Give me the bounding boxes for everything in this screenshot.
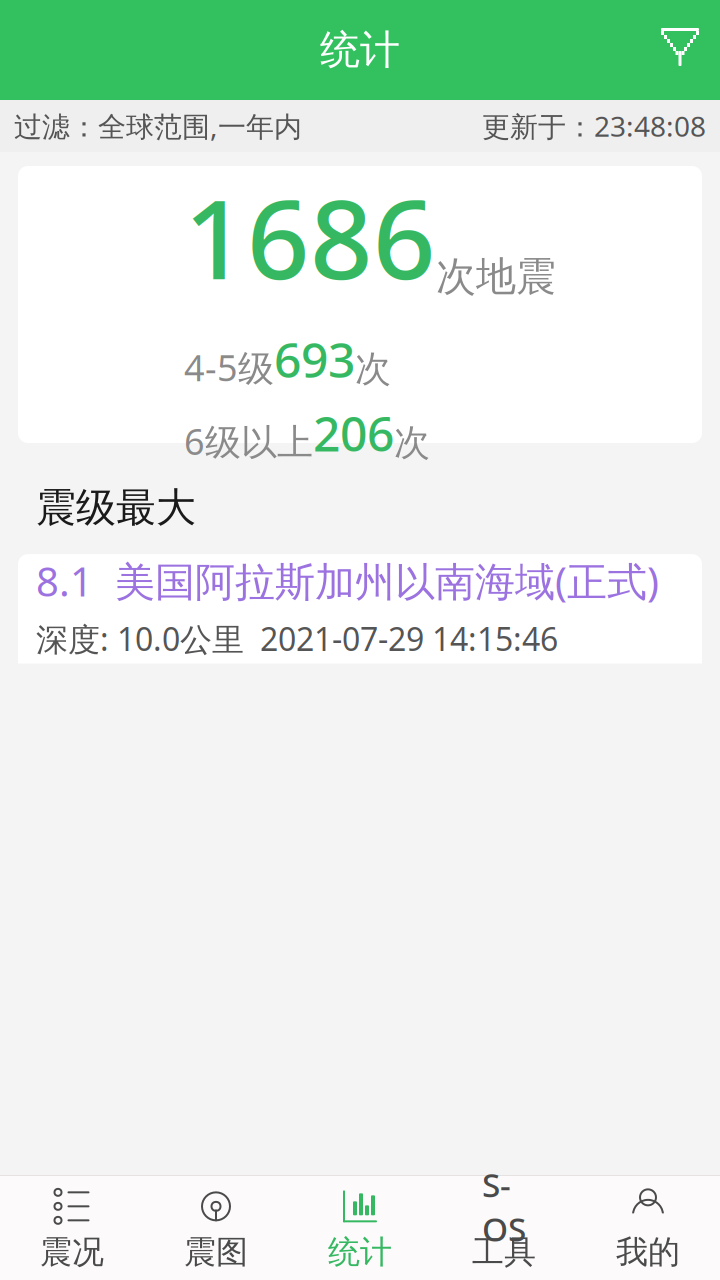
staticText: 4-5级 [184, 343, 274, 391]
staticText: 统计 [320, 25, 400, 74]
staticText: 深度: 10.0公里 [49, 1144, 257, 1186]
button[interactable]: 8.1 [18, 554, 702, 934]
staticText: 我的 [616, 1232, 680, 1272]
staticText: 过滤：全球范围,一年内 [14, 107, 302, 145]
staticText: 次地震 [436, 252, 556, 301]
button[interactable]: 震图 [144, 1176, 288, 1280]
staticText: 6级以上 [184, 417, 313, 465]
staticText: 次 [394, 421, 430, 465]
staticText: 震级最大 [36, 483, 196, 532]
button[interactable]: 我的 [576, 1176, 720, 1280]
staticText: 深度: 10.0公里 2021-07-29 14:15:46 [36, 617, 558, 660]
staticText: 统计 [328, 1232, 392, 1272]
staticText: SOS [482, 1162, 526, 1251]
button[interactable]: 震况 [0, 1176, 144, 1280]
button[interactable]: SOS [432, 1176, 576, 1280]
staticText: 693 [274, 327, 355, 391]
staticText: 1686 [184, 164, 436, 309]
staticText: 美国阿拉斯加州以南海域(正式) [115, 554, 659, 607]
button[interactable]: 3.2 重庆沙坪坝 [18, 1041, 702, 1211]
staticText: 更新于：23:48:08 [482, 107, 706, 145]
button[interactable]: 筛选 [658, 28, 702, 72]
staticText: 8.1 [36, 554, 93, 607]
staticText: 2021-10-14 05:06:43 [49, 1186, 213, 1271]
staticText: 工具 [472, 1232, 536, 1272]
button[interactable]: 统计 [288, 1176, 432, 1280]
staticText: 次 [355, 347, 391, 391]
staticText: 震况 [40, 1232, 104, 1272]
staticText: 震图 [184, 1232, 248, 1272]
staticText: 206 [313, 401, 394, 465]
